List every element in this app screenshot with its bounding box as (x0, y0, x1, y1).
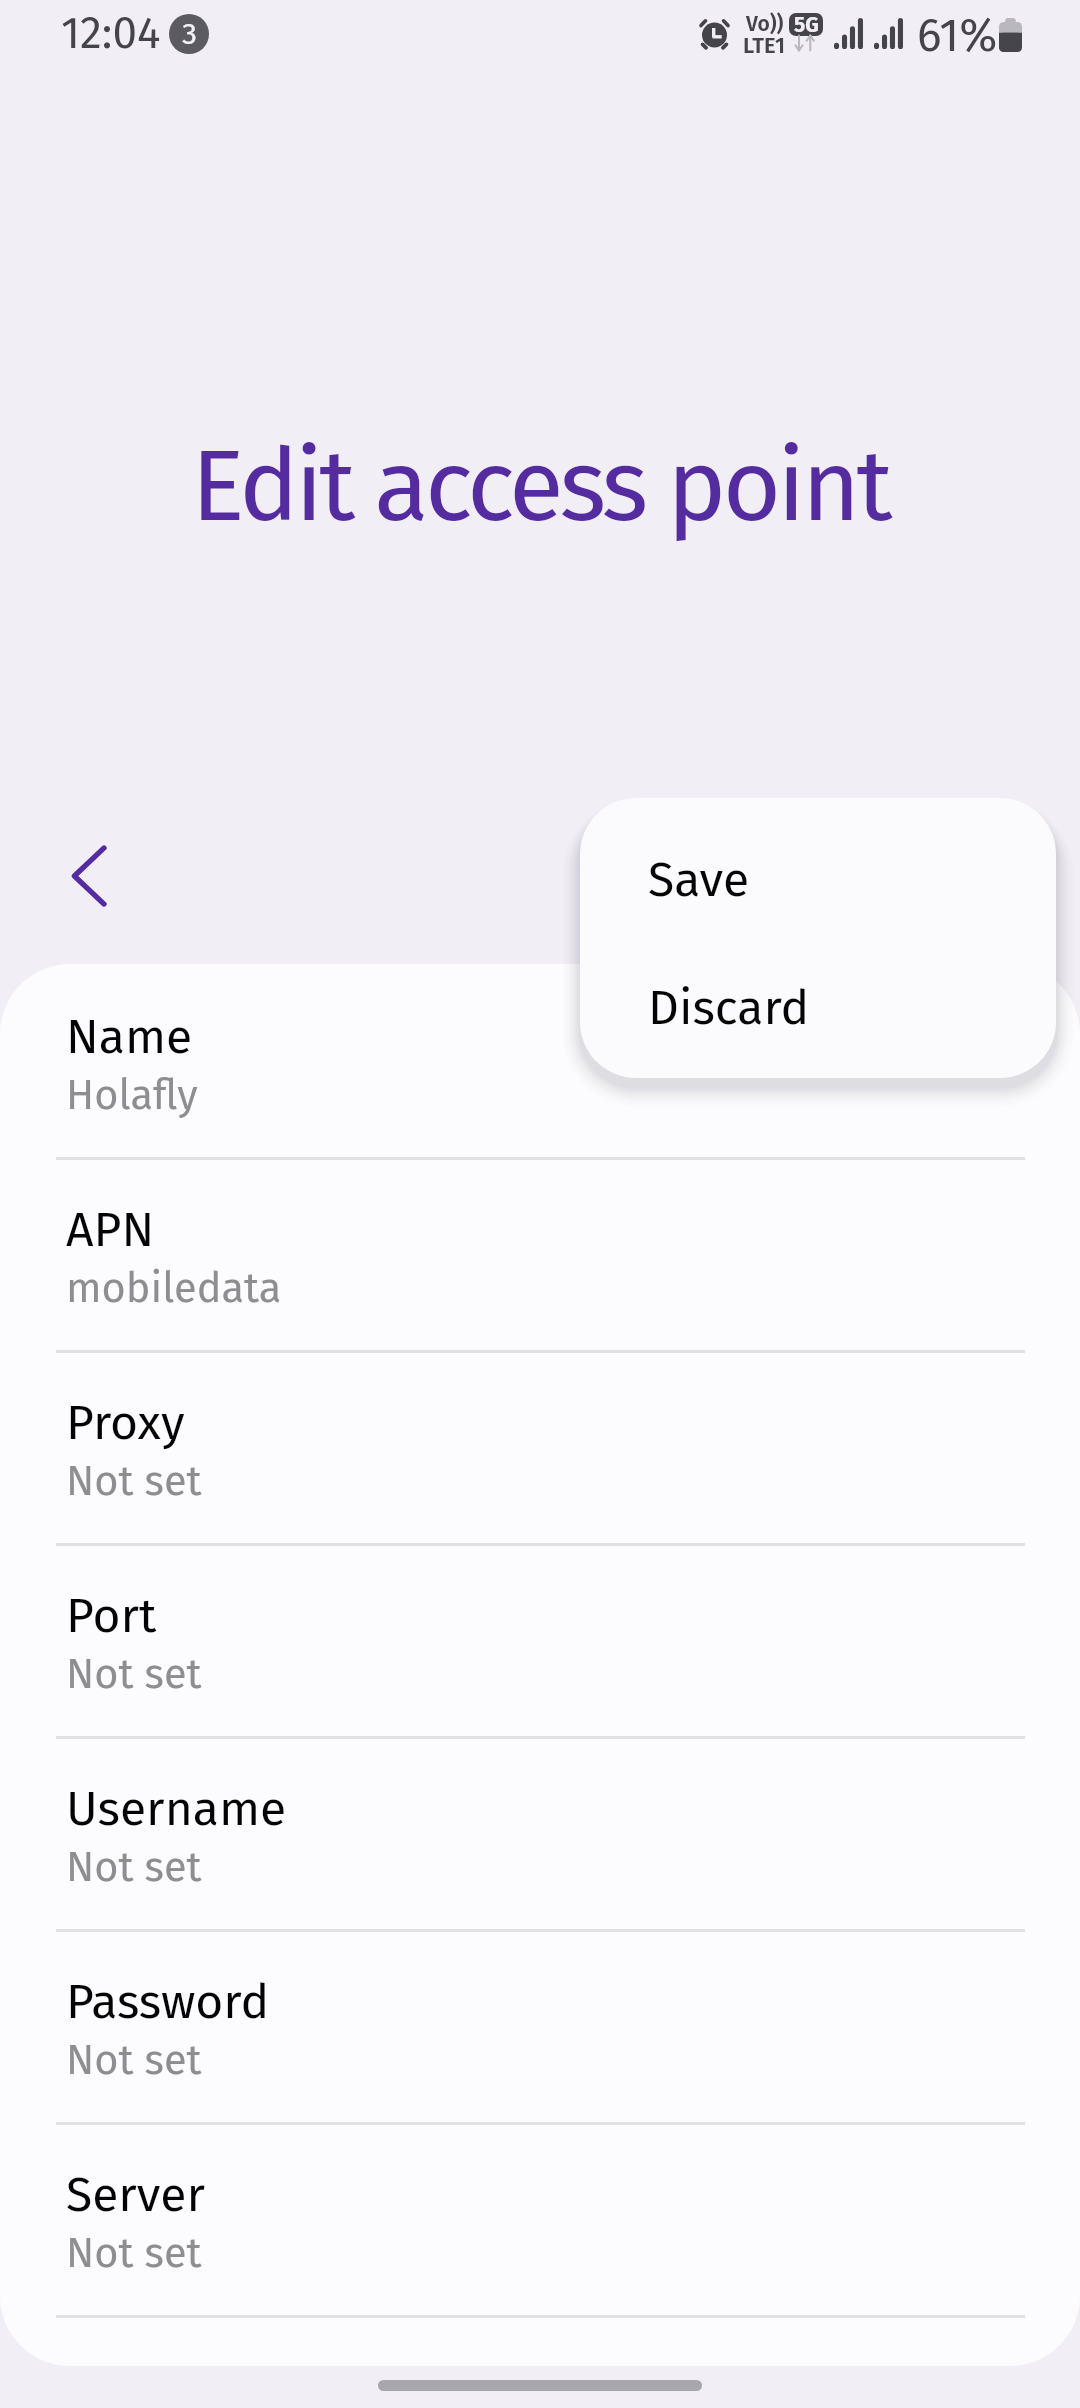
button[interactable]: Proxy (0, 1353, 1080, 1543)
button[interactable]: APN (0, 1160, 1080, 1350)
staticText: 12:04 (61, 7, 161, 60)
staticText: Password (66, 1973, 270, 2031)
button[interactable]: Name (0, 967, 1080, 1157)
staticText: 5G (794, 13, 819, 35)
staticText: mobiledata (66, 1263, 282, 1313)
button[interactable]: Password (0, 1932, 1080, 2122)
staticText: Proxy (66, 1394, 185, 1452)
staticText: Save (648, 851, 750, 909)
button[interactable]: Username (0, 1739, 1080, 1929)
staticText: Discard (648, 979, 810, 1037)
staticText: 61% (917, 8, 998, 63)
button[interactable]: Navigate up (33, 821, 143, 931)
staticText: Not set (66, 1456, 202, 1506)
staticText: APN (66, 1201, 155, 1259)
staticText: LTE1 (743, 32, 785, 58)
button[interactable]: Save (580, 816, 1056, 944)
staticText: Edit access point (0, 426, 1080, 546)
staticText: Vo)) (746, 11, 784, 36)
staticText: Port (66, 1587, 157, 1645)
button[interactable]: Discard (580, 944, 1056, 1072)
staticText: 3 (182, 16, 197, 52)
staticText: Username (66, 1780, 287, 1838)
staticText: Holafly (66, 1070, 198, 1120)
staticText: Not set (66, 2228, 202, 2278)
staticText: Name (66, 1008, 193, 1066)
button[interactable]: Port (0, 1546, 1080, 1736)
staticText: Not set (66, 1649, 202, 1699)
staticText: Not set (66, 1842, 202, 1892)
button[interactable]: Server (0, 2125, 1080, 2315)
staticText: Server (66, 2166, 205, 2224)
staticText: Not set (66, 2035, 202, 2085)
